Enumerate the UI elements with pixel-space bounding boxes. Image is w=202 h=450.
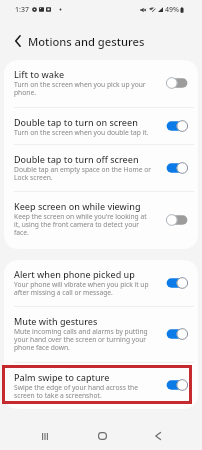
button[interactable]: Back [143, 428, 173, 444]
button[interactable]: On [163, 158, 191, 178]
button[interactable]: Palm swipe to capture [4, 363, 198, 409]
button[interactable]: Recent apps [30, 428, 60, 444]
staticText: Turn on the screen when you double tap i… [14, 128, 149, 137]
button[interactable]: On [163, 116, 191, 136]
button[interactable]: Home [87, 428, 117, 444]
staticText: Mute incoming calls and alarms by puttin… [14, 327, 148, 352]
staticText: Palm swipe to capture [14, 371, 110, 383]
button[interactable]: On [163, 324, 191, 344]
staticText: Turn on the screen when you pick up your… [14, 80, 146, 97]
staticText: Double tap an empty space on the Home or… [14, 165, 152, 182]
button[interactable]: Keep screen on while viewing [4, 192, 198, 249]
staticText: Lift to wake [14, 68, 65, 80]
staticText: Motions and gestures [28, 34, 145, 49]
staticText: Keep screen on while viewing [14, 200, 141, 212]
button[interactable]: Off [163, 210, 191, 230]
staticText: 49% [165, 5, 179, 15]
button[interactable]: Double tap to turn on screen [4, 108, 198, 145]
button[interactable]: Double tap to turn off screen [4, 145, 198, 192]
button[interactable]: Lift to wake [4, 60, 198, 108]
staticText: Double tap to turn off screen [14, 153, 139, 165]
staticText: Swipe the edge of your hand across the s… [14, 383, 138, 400]
button[interactable]: Mute with gestures [4, 307, 198, 363]
button[interactable]: Navigate up [0, 26, 28, 56]
staticText: Mute with gestures [14, 315, 98, 327]
button[interactable]: Off [163, 73, 191, 93]
button[interactable]: On [163, 273, 191, 293]
button[interactable]: Alert when phone picked up [4, 260, 198, 307]
staticText: Alert when phone picked up [14, 268, 135, 280]
staticText: Keep the screen on while you're looking … [14, 212, 147, 237]
staticText: Your phone will vibrate when you pick it… [14, 280, 149, 297]
button[interactable]: On [163, 375, 191, 395]
staticText: 1:37 [15, 5, 29, 15]
staticText: Double tap to turn on screen [14, 116, 138, 128]
